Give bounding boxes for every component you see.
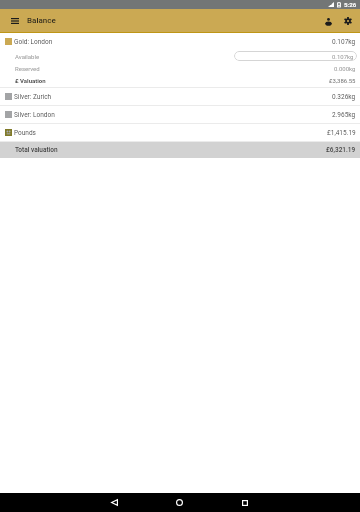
staticText: £6,321.19 [326,146,356,154]
button[interactable]: Account [319,11,338,30]
button[interactable]: Silver: London [0,106,360,123]
staticText: Silver: Zurich [14,93,52,101]
staticText: 0.000kg [334,65,356,72]
staticText: 0.326kg [332,93,356,101]
staticText: Available [15,53,40,60]
button[interactable]: Back [82,493,147,512]
staticText: Balance [27,16,56,25]
staticText: Silver: London [14,111,55,119]
button[interactable]: Gold: London [0,33,360,50]
staticText: 5:26 [344,1,357,8]
button[interactable]: Recent apps [212,493,277,512]
button[interactable]: Silver: Zurich [0,88,360,105]
staticText: Pounds [14,129,36,137]
button[interactable]: Open navigation menu [5,11,24,30]
staticText: £3,386.55 [329,77,356,84]
staticText: £1,415.19 [327,129,356,137]
button[interactable]: 0.107kg [234,51,357,61]
staticText: Reserved [15,65,40,72]
staticText: Gold: London [14,38,53,46]
button[interactable]: Home [147,493,212,512]
staticText: 0.107kg [332,53,354,60]
staticText: 2.965kg [332,111,356,119]
button[interactable]: Total valuation [0,142,360,158]
staticText: Total valuation [15,146,58,154]
staticText: 0.107kg [332,38,356,46]
button[interactable]: Settings [338,11,357,30]
staticText: £ Valuation [15,77,46,84]
button[interactable]: Pounds [0,124,360,141]
